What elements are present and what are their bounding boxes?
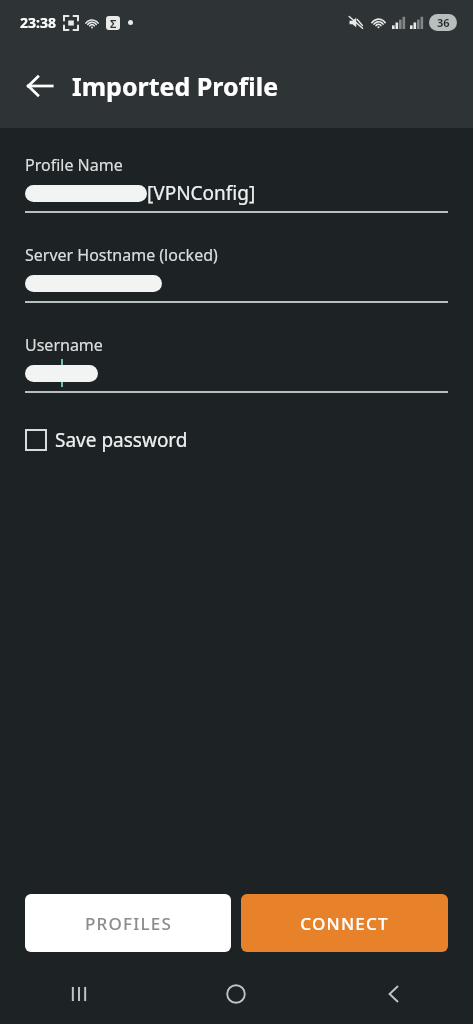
button[interactable]: Save password — [25, 425, 188, 455]
staticText: Save password — [55, 427, 188, 453]
button[interactable]: CONNECT — [241, 894, 448, 952]
button[interactable]: Back — [14, 60, 66, 112]
staticText: 23:38 — [20, 13, 56, 32]
staticText: 36 — [437, 15, 450, 30]
staticText: Profile Name — [25, 154, 123, 176]
button[interactable]: Profile Name — [25, 154, 448, 213]
staticText: Σ — [110, 16, 117, 30]
staticText: Server Hostname (locked) — [25, 244, 218, 266]
staticText: Username — [25, 334, 103, 356]
button[interactable]: PROFILES — [25, 894, 231, 952]
button[interactable]: Home — [157, 964, 315, 1024]
button[interactable]: Username — [25, 334, 448, 393]
button[interactable]: Server Hostname (locked) — [25, 244, 448, 303]
staticText: [VPNConfig] — [147, 180, 256, 206]
staticText: PROFILES — [85, 912, 172, 935]
staticText: Imported Profile — [72, 69, 279, 103]
button[interactable]: Back — [315, 964, 473, 1024]
staticText: CONNECT — [300, 912, 389, 935]
button[interactable]: Recent apps — [0, 964, 157, 1024]
